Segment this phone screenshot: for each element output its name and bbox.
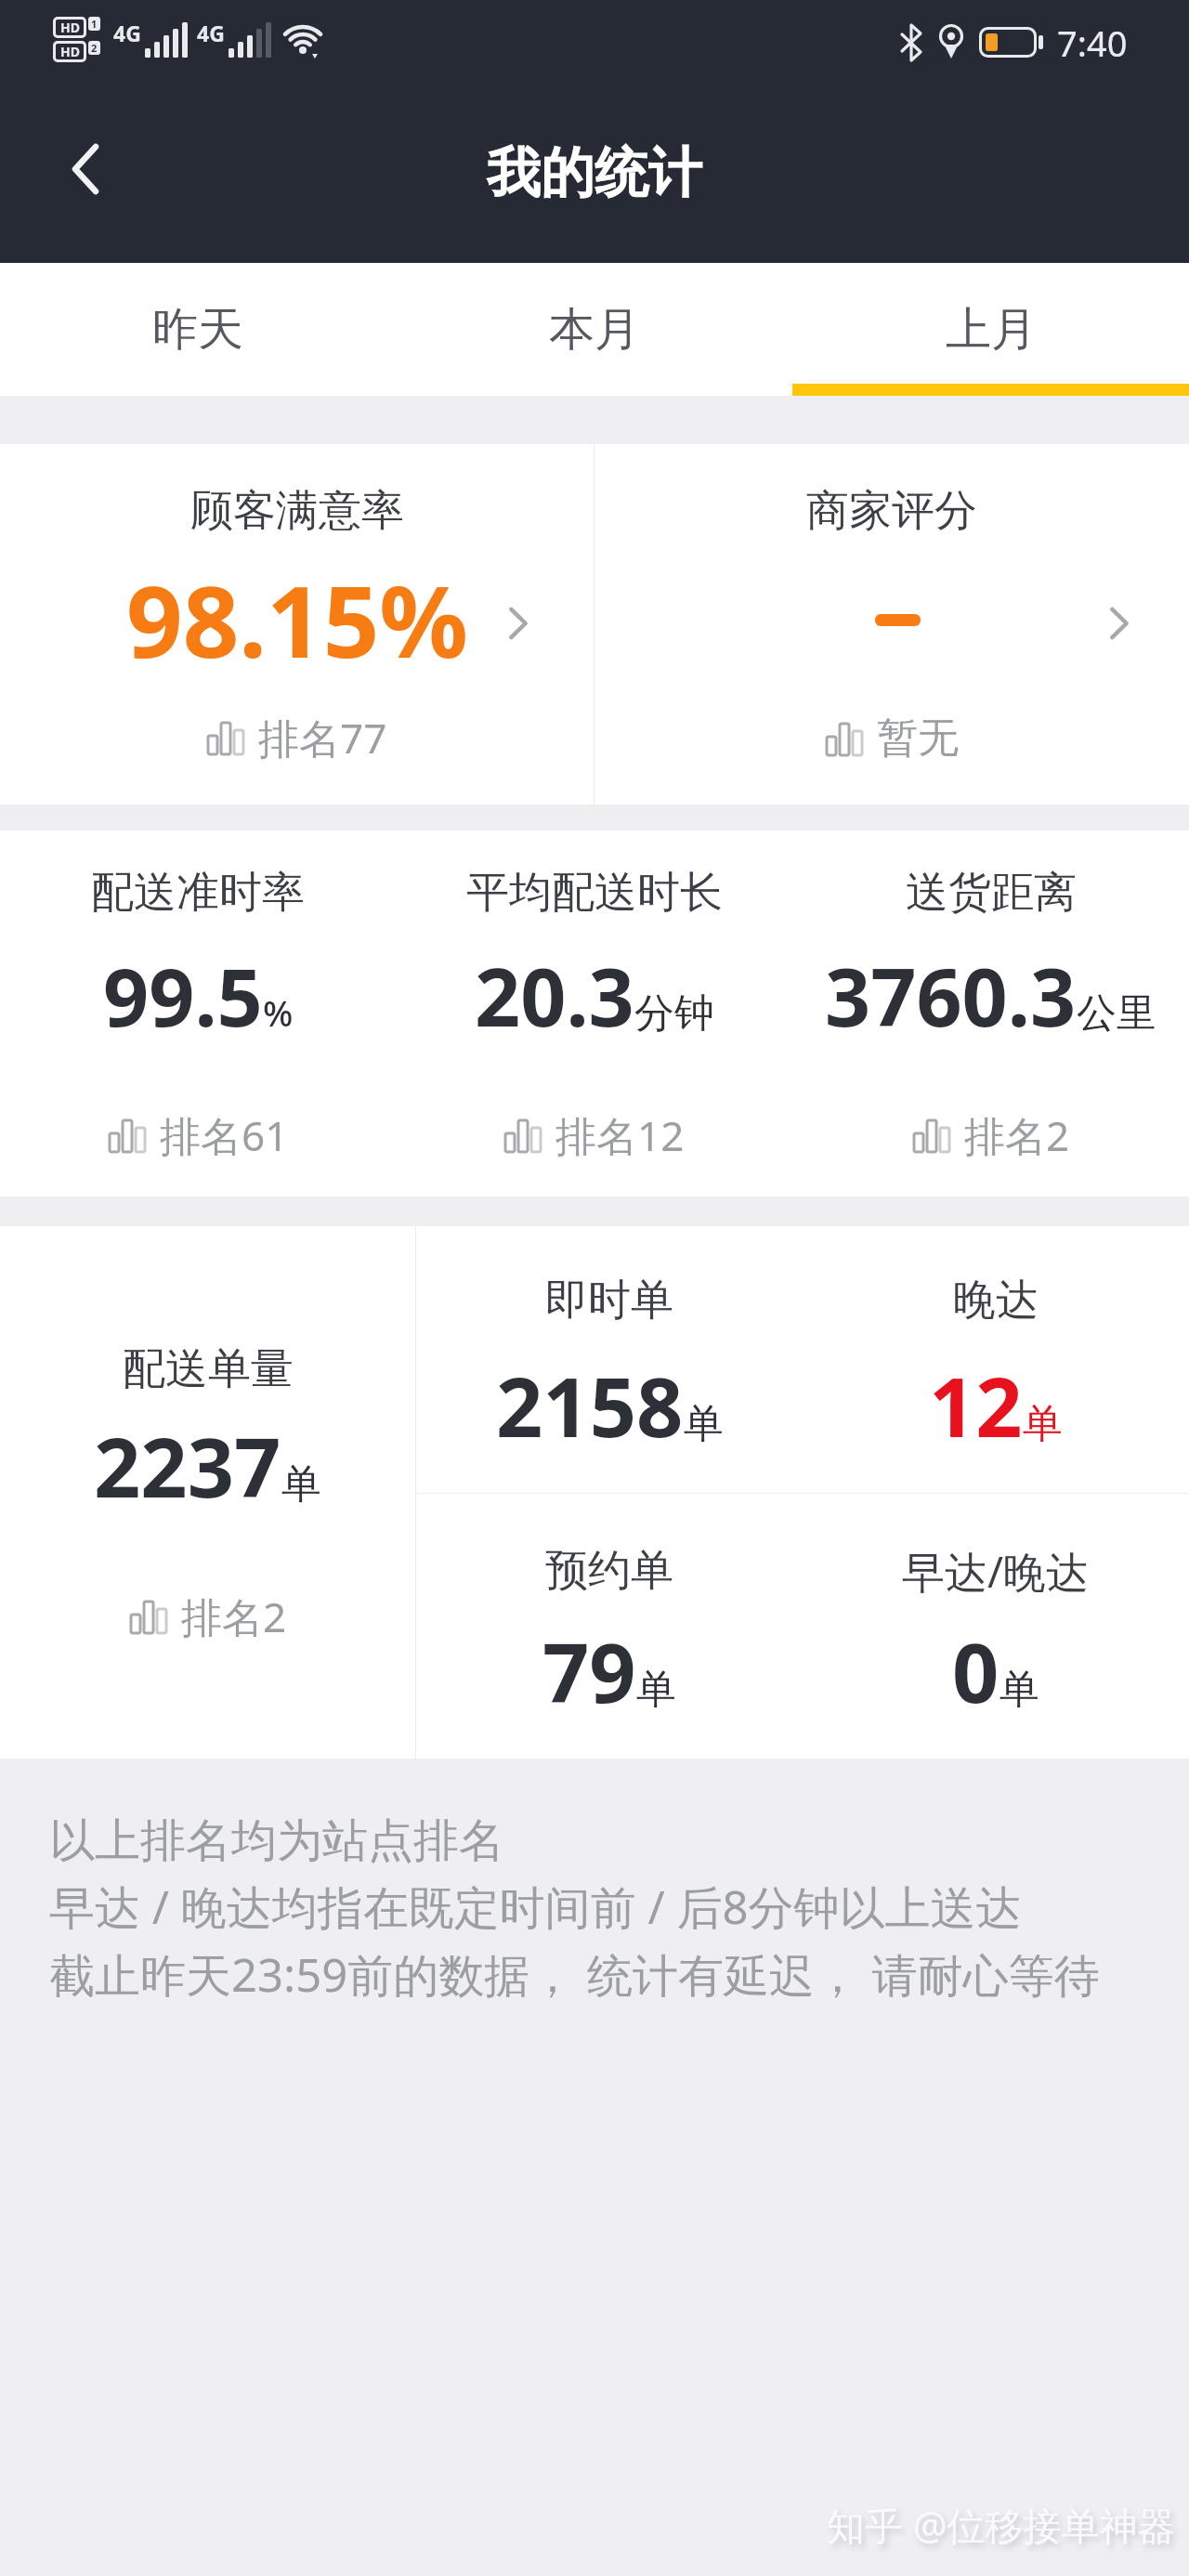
staticText: 单 xyxy=(684,1399,724,1449)
staticText: 98.15% xyxy=(126,553,468,664)
button[interactable] xyxy=(48,130,123,208)
staticText: HD xyxy=(60,19,80,36)
staticText: 早达/晚达 xyxy=(902,1542,1090,1601)
staticText: 知乎 @位移接单神器 xyxy=(827,2499,1176,2551)
staticText: 昨天 xyxy=(152,301,243,359)
button[interactable]: 上月 xyxy=(792,263,1189,396)
staticText: 截止昨天23:59前的数据， 统计有延迟， 请耐心等待 xyxy=(49,1943,1100,2006)
staticText: 2158 xyxy=(496,1350,684,1461)
staticText: HD xyxy=(60,43,80,60)
staticText: 上月 xyxy=(946,301,1037,359)
staticText: 7:40 xyxy=(1057,19,1128,67)
button[interactable]: 顾客满意率 xyxy=(0,444,594,804)
staticText: 0 xyxy=(952,1615,1000,1727)
staticText: 即时单 xyxy=(545,1274,673,1327)
staticText: 20.3 xyxy=(475,941,634,1050)
staticText: 单 xyxy=(1023,1399,1063,1449)
staticText: 配送单量 xyxy=(123,1342,294,1396)
staticText: 公里 xyxy=(1077,988,1156,1039)
staticText: 预约单 xyxy=(545,1544,673,1598)
staticText: 顾客满意率 xyxy=(190,484,404,538)
staticText: 本月 xyxy=(549,301,640,359)
staticText: 排名2 xyxy=(964,1107,1070,1163)
staticText: 以上排名均为站点排名 xyxy=(49,1812,504,1870)
staticText: 79 xyxy=(542,1615,636,1727)
staticText: 早达 / 晚达均指在既定时间前 / 后8分钟以上送达 xyxy=(49,1876,1022,1938)
staticText: 4G xyxy=(113,19,141,47)
staticText: 3760.3 xyxy=(825,941,1077,1050)
button[interactable]: 昨天 xyxy=(0,263,396,396)
staticText: 送货距离 xyxy=(906,866,1077,920)
staticText: 排名12 xyxy=(555,1107,685,1163)
staticText: 4G xyxy=(197,19,225,47)
staticText: 晚达 xyxy=(953,1274,1039,1327)
staticText: 我的统计 xyxy=(487,139,702,207)
staticText: 1 xyxy=(91,17,98,31)
staticText: 99.5 xyxy=(103,941,263,1050)
staticText: 商家评分 xyxy=(806,484,977,538)
staticText: 2 xyxy=(91,41,98,55)
staticText: 排名2 xyxy=(181,1589,287,1644)
staticText: % xyxy=(263,988,294,1037)
staticText: 配送准时率 xyxy=(91,866,305,920)
staticText: 单 xyxy=(636,1665,676,1715)
staticText: 分钟 xyxy=(634,988,714,1039)
button[interactable]: 商家评分 xyxy=(594,444,1189,804)
staticText: 单 xyxy=(1000,1665,1039,1715)
staticText: 排名61 xyxy=(160,1107,289,1163)
staticText: 2237 xyxy=(94,1410,281,1522)
staticText: 暂无 xyxy=(877,713,959,764)
staticText: 单 xyxy=(281,1459,321,1510)
staticText: 排名77 xyxy=(258,710,387,765)
staticText: 12 xyxy=(929,1350,1023,1461)
button[interactable]: 本月 xyxy=(396,263,792,396)
staticText: 平均配送时长 xyxy=(466,866,723,920)
